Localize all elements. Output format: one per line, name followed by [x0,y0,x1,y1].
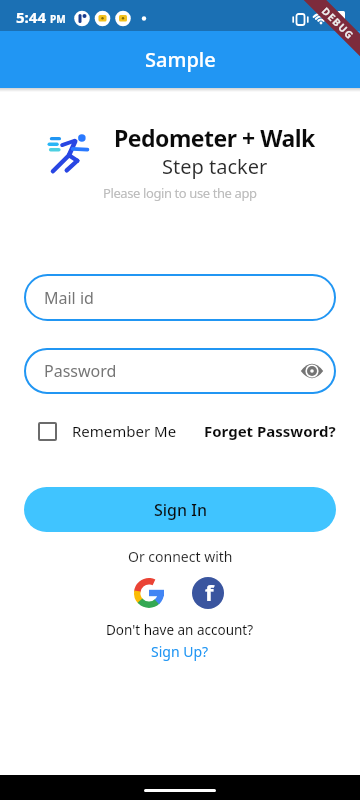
button[interactable]: f [192,577,224,609]
staticText: Password [44,360,117,382]
staticText: f [205,577,214,607]
staticText: 5:44 [16,7,46,27]
button[interactable]: Mail id [24,274,336,321]
staticText: Remember Me [72,421,177,441]
staticText: Mail id [44,287,94,309]
staticText: Please login to use the app [103,184,257,202]
staticText: PM [50,12,66,26]
staticText: Pedometer + Walk [114,122,315,153]
button[interactable] [300,359,324,383]
button[interactable]: Sign Up? [151,642,209,661]
button[interactable]: Sign In [24,487,336,532]
staticText: Or connect with [128,547,233,566]
staticText: Sample [145,46,216,73]
staticText: Don't have an account? [106,621,254,639]
button[interactable] [133,577,165,609]
staticText: Sign In [154,499,207,521]
button[interactable]: Password [24,348,336,394]
staticText: DEBUG [319,4,358,43]
button[interactable]: Forget Password? [204,421,336,441]
staticText: Step tacker [162,153,268,180]
button[interactable] [38,422,57,441]
